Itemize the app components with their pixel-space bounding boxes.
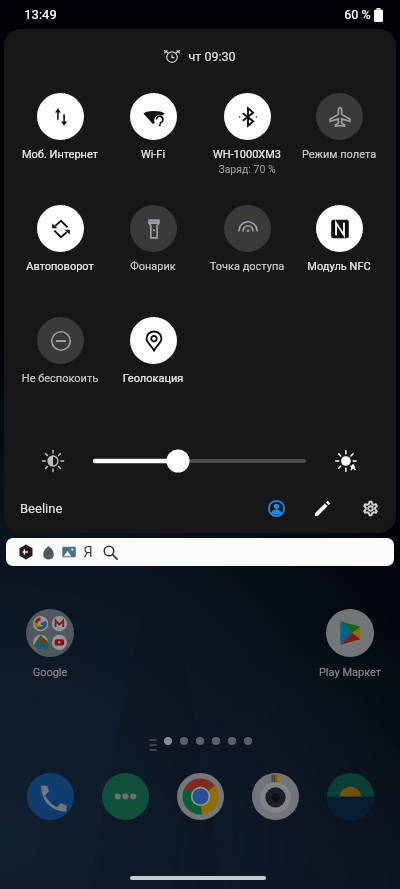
staticText: Play Маркет bbox=[304, 666, 396, 679]
button[interactable]: Gallery bbox=[327, 773, 374, 820]
button[interactable]: Beeline bbox=[20, 494, 63, 522]
staticText: Геолокация bbox=[107, 372, 199, 385]
staticText: Google bbox=[4, 666, 96, 679]
button[interactable]: Weather bbox=[37, 541, 59, 563]
button[interactable]: Автоповорот bbox=[14, 205, 106, 273]
staticText: чт 09:30 bbox=[188, 49, 236, 64]
button[interactable]: Search bbox=[99, 541, 121, 563]
staticText: 60 % bbox=[344, 7, 371, 22]
staticText: Не беспокоить bbox=[14, 372, 106, 385]
button[interactable]: Phone bbox=[27, 773, 74, 820]
staticText: Beeline bbox=[20, 501, 63, 516]
staticText: Режим полета bbox=[293, 148, 385, 161]
button[interactable]: Точка доступа bbox=[201, 205, 293, 273]
staticText: Моб. Интернет bbox=[14, 148, 106, 161]
button[interactable]: Brightness slider bbox=[84, 448, 324, 474]
staticText: Автоповорот bbox=[14, 260, 106, 273]
button[interactable]: Edit bbox=[308, 494, 336, 522]
button[interactable]: Alice bbox=[6, 538, 394, 566]
button[interactable]: Play Маркет bbox=[304, 609, 396, 679]
button[interactable]: Моб. Интернет bbox=[14, 93, 106, 161]
staticText: Я bbox=[83, 543, 93, 561]
button[interactable]: Messages bbox=[102, 773, 149, 820]
button[interactable]: Wi-Fi bbox=[107, 93, 199, 161]
button[interactable]: Модуль NFC bbox=[293, 205, 385, 273]
button[interactable]: Images bbox=[58, 541, 80, 563]
staticText: Заряд: 70 % bbox=[201, 163, 293, 175]
button[interactable]: Google bbox=[4, 609, 96, 679]
button[interactable]: Фонарик bbox=[107, 205, 199, 273]
staticText: Модуль NFC bbox=[293, 260, 385, 273]
button[interactable]: Camera bbox=[252, 773, 299, 820]
staticText: WH-1000XM3 bbox=[201, 148, 293, 161]
staticText: Wi-Fi bbox=[107, 148, 199, 161]
button[interactable]: WH-1000XM3 bbox=[201, 93, 293, 175]
button[interactable]: Brightness bbox=[42, 450, 64, 472]
button[interactable]: Не беспокоить bbox=[14, 317, 106, 385]
staticText: 13:49 bbox=[24, 7, 57, 22]
button[interactable]: Account bbox=[262, 494, 290, 522]
staticText: Точка доступа bbox=[201, 260, 293, 273]
button[interactable]: Alice bbox=[15, 541, 37, 563]
staticText: Фонарик bbox=[107, 260, 199, 273]
button[interactable]: Auto brightness bbox=[336, 450, 358, 472]
button[interactable]: Settings bbox=[356, 494, 384, 522]
button[interactable]: Режим полета bbox=[293, 93, 385, 161]
button[interactable]: Геолокация bbox=[107, 317, 199, 385]
button[interactable]: Я bbox=[79, 543, 97, 561]
button[interactable]: Chrome bbox=[177, 773, 224, 820]
